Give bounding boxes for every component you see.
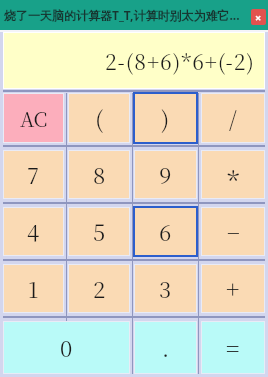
staticText: 3 <box>159 273 172 305</box>
button[interactable]: × <box>251 9 266 25</box>
staticText: ( <box>95 102 104 135</box>
staticText: 2 <box>93 273 106 305</box>
staticText: 0 <box>60 332 73 364</box>
button[interactable]: = <box>201 321 265 374</box>
staticText: / <box>229 102 237 134</box>
staticText: 5 <box>93 216 106 248</box>
staticText: . <box>162 332 170 364</box>
button[interactable]: ( <box>68 93 130 143</box>
staticText: − <box>227 216 240 248</box>
staticText: 8 <box>93 159 106 191</box>
button[interactable]: − <box>201 207 265 256</box>
button[interactable]: 3 <box>134 264 197 313</box>
staticText: 7 <box>27 159 40 191</box>
button[interactable]: 2 <box>68 264 130 313</box>
button[interactable]: 6 <box>134 207 197 256</box>
button[interactable]: * <box>201 150 265 199</box>
staticText: 4 <box>27 216 40 248</box>
button[interactable]: ) <box>134 93 197 143</box>
staticText: * <box>227 161 240 198</box>
staticText: 2-(8+6)*6+(-2) <box>105 46 255 76</box>
staticText: 9 <box>159 159 172 191</box>
staticText: × <box>255 10 262 25</box>
button[interactable]: + <box>201 264 265 313</box>
staticText: + <box>226 272 240 305</box>
staticText: 1 <box>28 273 39 305</box>
button[interactable]: . <box>134 321 197 374</box>
button[interactable]: 8 <box>68 150 130 199</box>
staticText: = <box>226 331 240 364</box>
button[interactable]: 9 <box>134 150 197 199</box>
button[interactable]: 7 <box>3 150 64 199</box>
button[interactable]: 4 <box>3 207 64 256</box>
button[interactable]: 1 <box>3 264 64 313</box>
staticText: ) <box>161 102 170 135</box>
staticText: AC <box>20 104 48 133</box>
button[interactable]: / <box>201 93 265 143</box>
button[interactable]: AC <box>3 93 64 143</box>
staticText: 烧了一天脑的计算器T_T,计算时别太为难它... <box>4 7 240 23</box>
button[interactable]: 5 <box>68 207 130 256</box>
button[interactable]: 0 <box>3 321 130 374</box>
staticText: 6 <box>159 216 172 248</box>
